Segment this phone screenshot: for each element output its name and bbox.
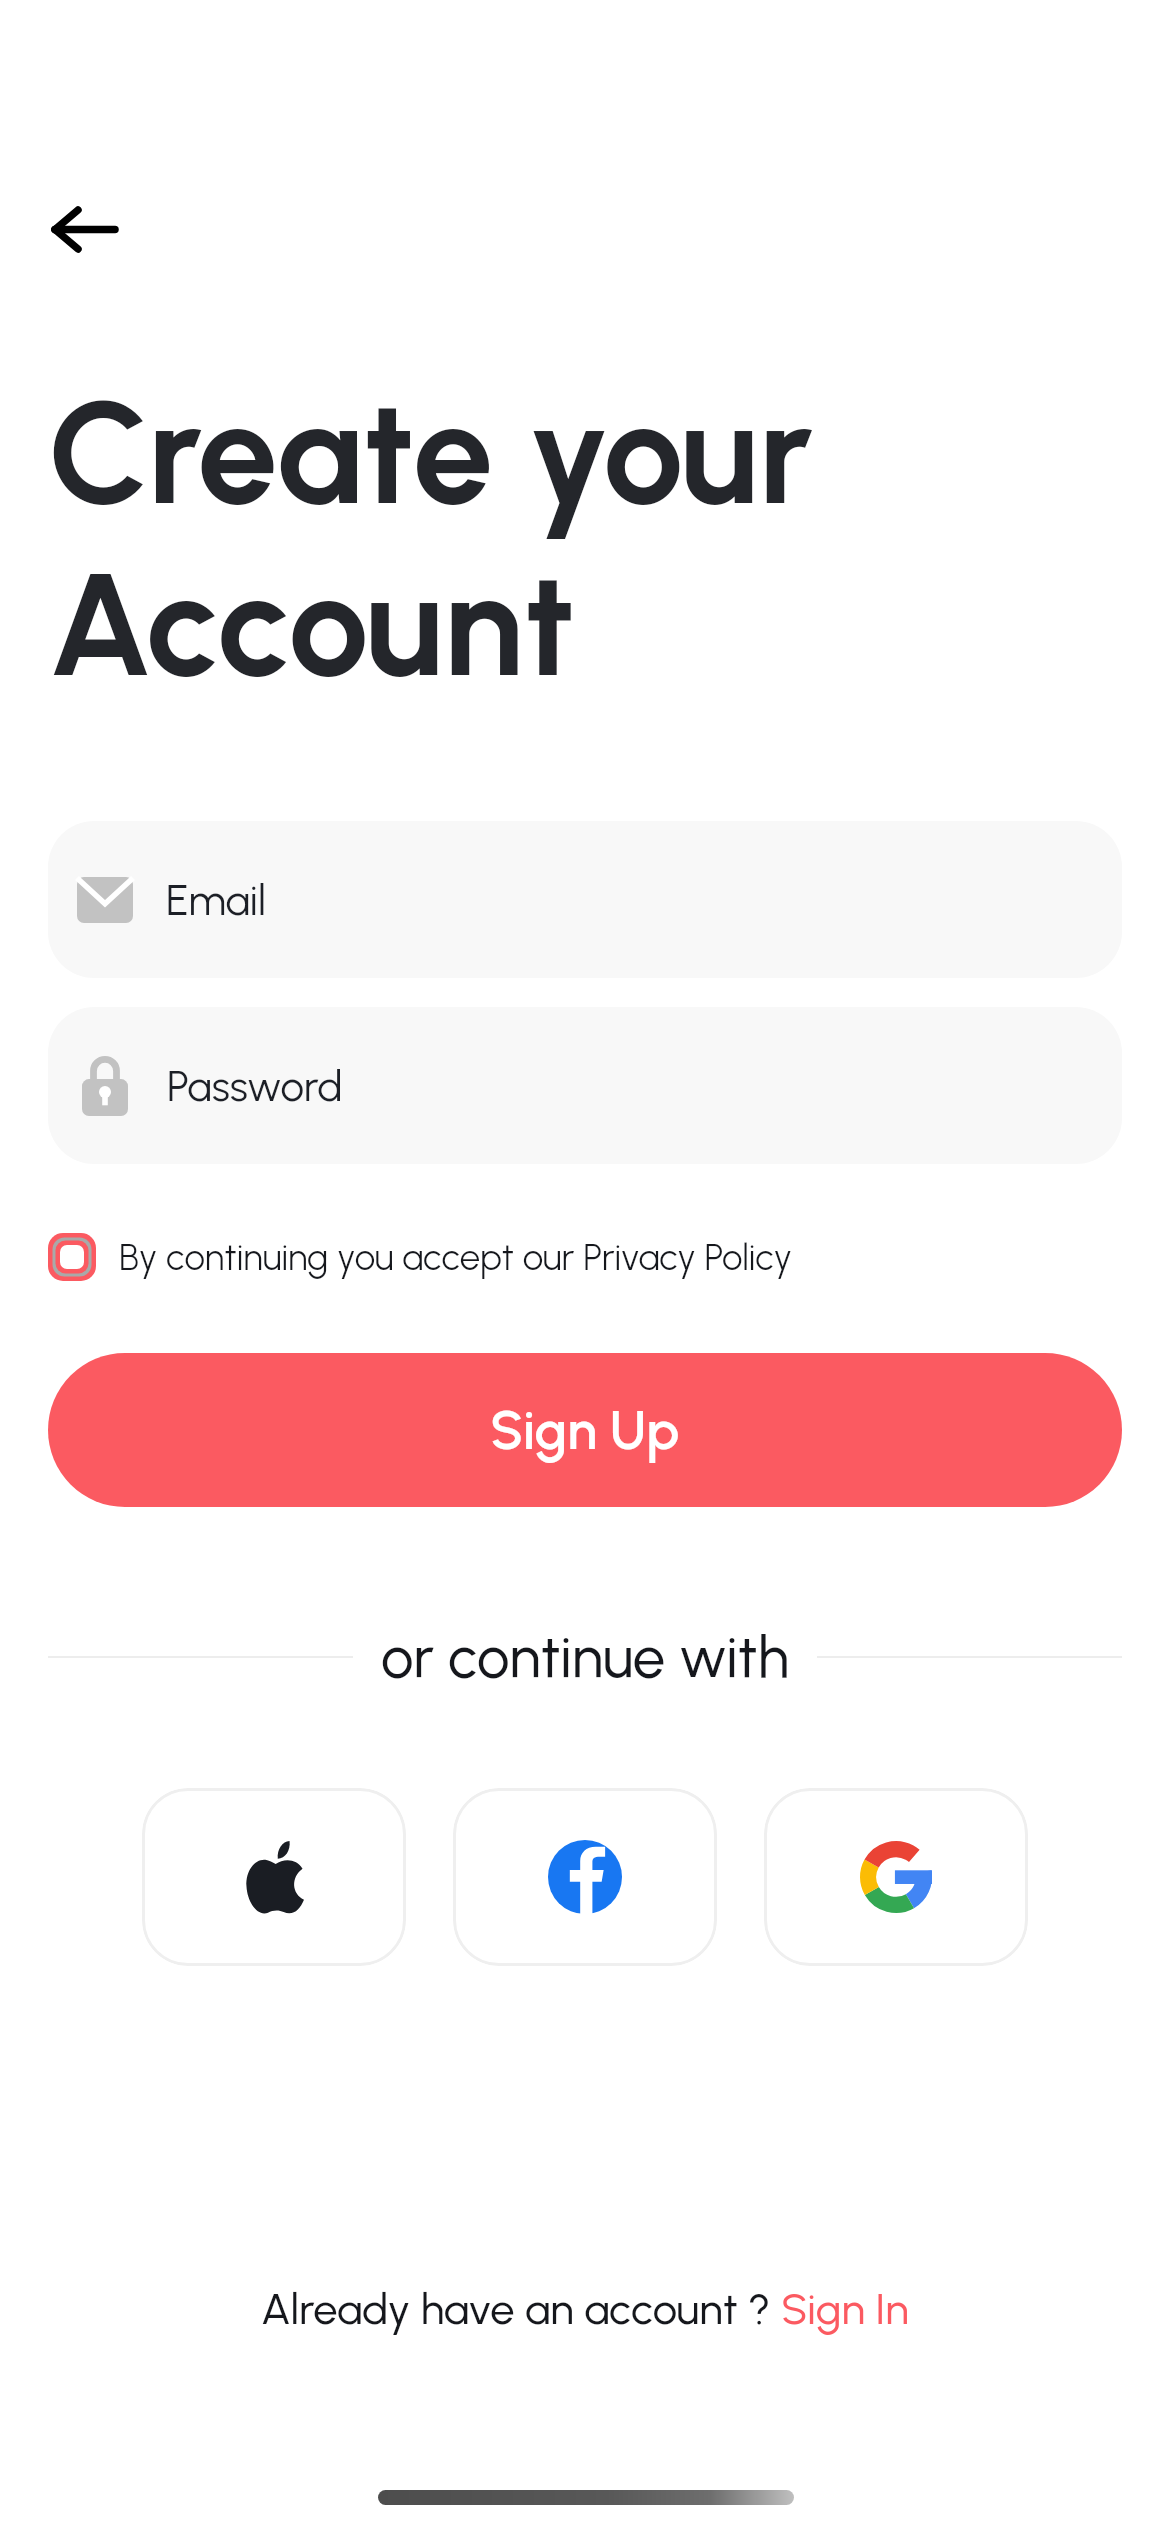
button[interactable]: Sign Up [48,1353,1122,1507]
button[interactable]: Password [48,1007,1122,1164]
staticText: Email [166,875,266,925]
button[interactable]: Email [48,821,1122,978]
other: Sign up with Facebook [548,1840,622,1914]
other: Sign up with Google [860,1841,932,1913]
button[interactable]: Sign In [781,2283,909,2335]
staticText: Sign Up [490,1398,680,1463]
button[interactable]: Sign up with Google [764,1788,1028,1966]
staticText: Create your Account [48,366,814,711]
button[interactable]: Sign up with Facebook [453,1788,717,1966]
staticText: Already have an account ? [261,2283,781,2335]
button[interactable]: Back [24,169,144,289]
staticText: By continuing you accept our Privacy Pol… [119,1235,793,1279]
button[interactable]: Sign up with Apple [142,1788,406,1966]
staticText: Password [167,1061,343,1111]
staticText: or continue with [381,1622,789,1692]
button[interactable]: By continuing you accept our Privacy Pol… [48,1225,793,1289]
other: Sign up with Apple [245,1841,304,1913]
staticText: Sign In [781,2283,909,2335]
